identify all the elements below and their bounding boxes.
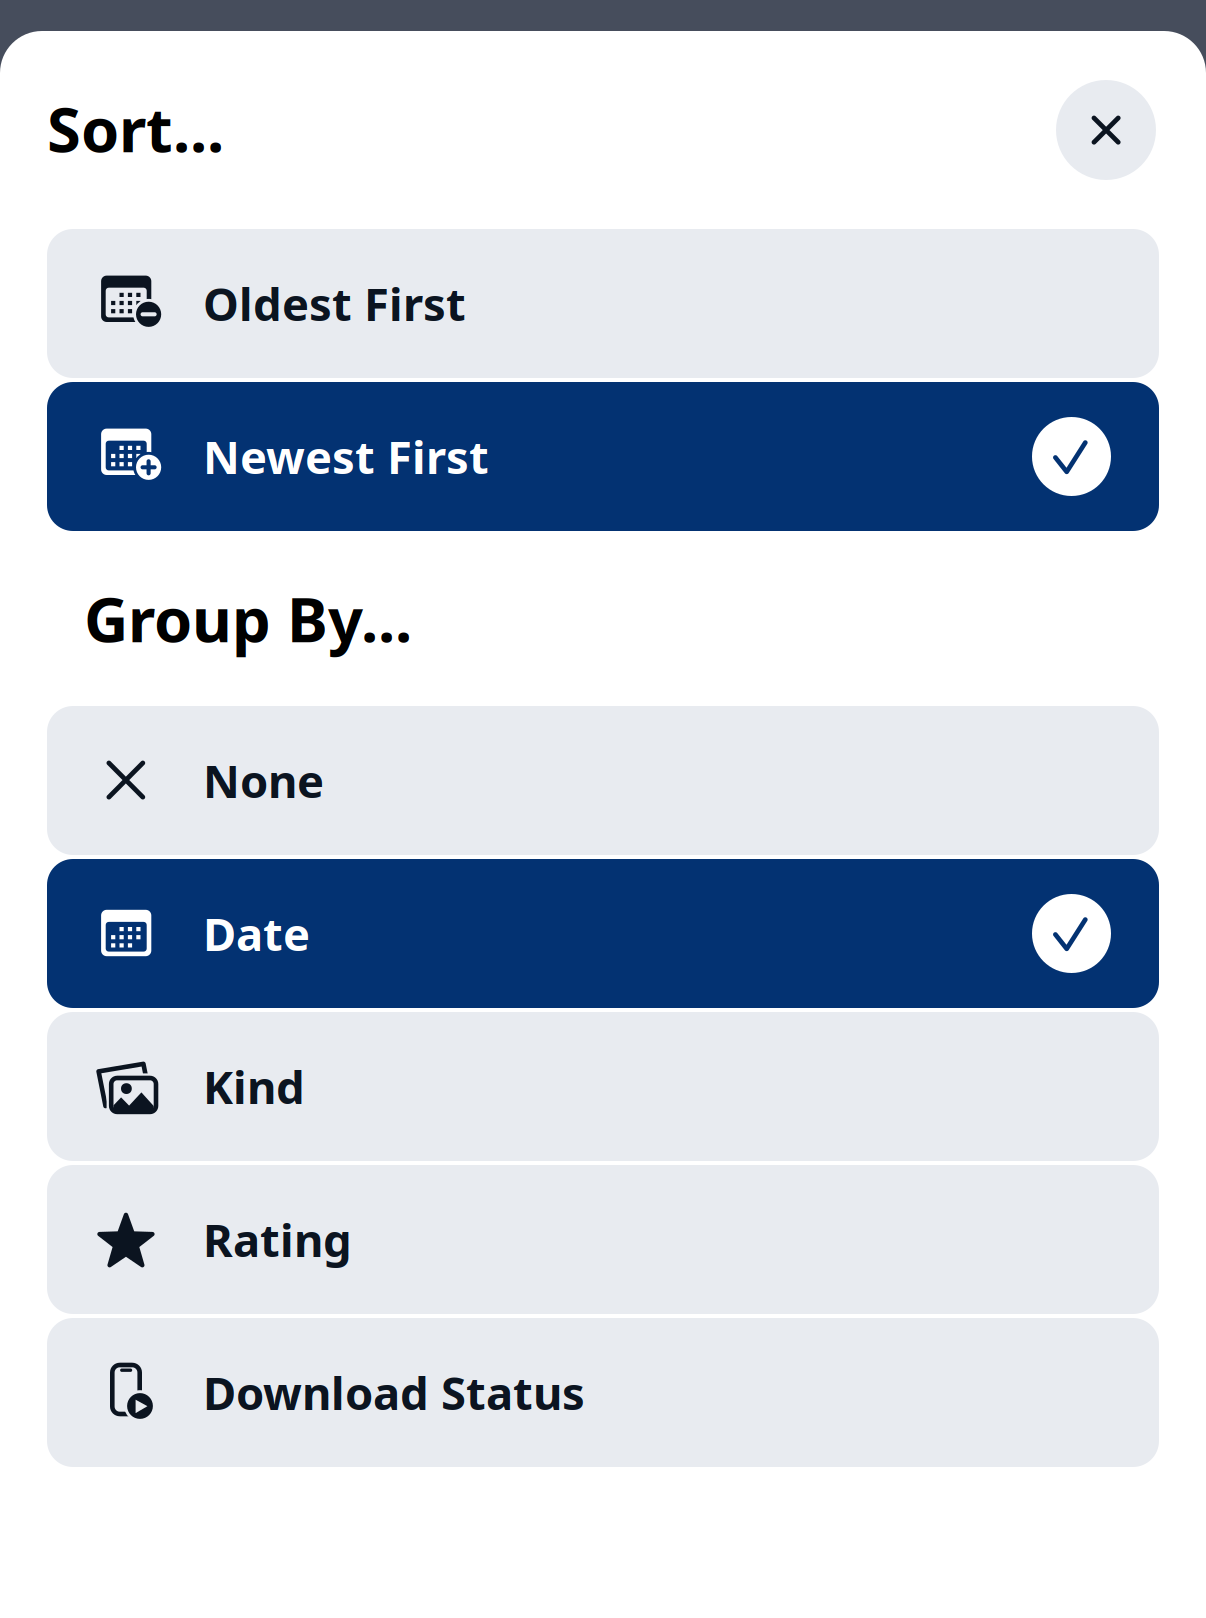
- button[interactable]: Download Status: [47, 1318, 1159, 1467]
- staticText: None: [203, 750, 324, 811]
- button[interactable]: Rating: [47, 1165, 1159, 1314]
- staticText: Download Status: [203, 1362, 585, 1423]
- staticText: Kind: [203, 1056, 305, 1117]
- staticText: Newest First: [203, 426, 489, 487]
- button[interactable]: Kind: [47, 1012, 1159, 1161]
- button[interactable]: Date: [47, 859, 1159, 1008]
- button[interactable]: Close: [1056, 80, 1156, 180]
- staticText: Group By...: [84, 578, 412, 659]
- staticText: Rating: [203, 1209, 352, 1270]
- staticText: Sort...: [47, 88, 224, 169]
- staticText: Oldest First: [203, 273, 466, 334]
- button[interactable]: Newest First: [47, 382, 1159, 531]
- button[interactable]: None: [47, 706, 1159, 855]
- staticText: Date: [203, 903, 310, 964]
- button[interactable]: Oldest First: [47, 229, 1159, 378]
